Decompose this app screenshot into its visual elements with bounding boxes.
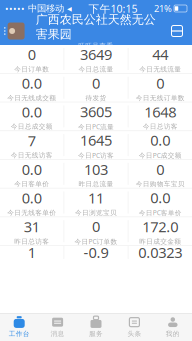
staticText: 今日总访客 — [143, 122, 178, 131]
button[interactable]: 0 — [64, 74, 128, 102]
staticText: 工作台 — [9, 330, 30, 338]
button[interactable]: 我的 — [154, 313, 192, 341]
staticText: 消息 — [51, 330, 65, 338]
staticText: 中国移动 — [25, 3, 64, 14]
staticText: 今日PC流量 — [78, 122, 114, 131]
staticText: 0.0 — [22, 102, 42, 122]
staticText: 0 — [156, 73, 164, 93]
staticText: 1648 — [144, 102, 176, 122]
button[interactable]: 头条 — [115, 313, 154, 341]
button[interactable]: 0 — [0, 45, 63, 73]
staticText: 0.0 — [150, 130, 170, 150]
button[interactable]: 0.0 — [0, 102, 63, 130]
button[interactable]: 172.0 — [128, 217, 192, 245]
staticText: 今日总流量 — [78, 65, 113, 73]
staticText: 今日浏览宝贝 — [75, 209, 117, 217]
staticText: ••••• — [5, 2, 25, 15]
staticText: 昨日总访客 — [14, 237, 49, 245]
button[interactable]: 103 — [64, 160, 128, 188]
staticText: 0.0323 — [138, 243, 182, 262]
button[interactable]: 0.0 — [0, 160, 63, 188]
staticText: 0 — [28, 45, 36, 64]
staticText: 7 — [28, 131, 36, 150]
staticText: 今日客单价 — [14, 180, 49, 188]
button[interactable]: 0 — [128, 160, 192, 188]
button[interactable]: 切换视图 — [165, 17, 189, 45]
button[interactable]: 1648 — [128, 102, 192, 130]
staticText: 0.0 — [22, 73, 42, 93]
staticText: 今日PC成交额 — [139, 151, 182, 160]
staticText: 0 — [92, 216, 100, 236]
staticText: 今日PC客单价 — [139, 208, 182, 217]
button[interactable]: 0 — [64, 217, 128, 245]
staticText: 广西农民公社天然无公害果园 — [36, 12, 156, 42]
button[interactable]: 11 — [64, 188, 128, 216]
staticText: 下午10:15 — [88, 1, 137, 16]
staticText: 103 — [84, 159, 108, 179]
staticText: 今日PC访客 — [78, 151, 114, 160]
staticText: 头条 — [127, 330, 141, 338]
staticText: 我的 — [166, 330, 180, 338]
staticText: 今日订单数 — [14, 65, 49, 73]
staticText: -0.9 — [83, 243, 108, 262]
staticText: 0.0 — [22, 159, 42, 179]
staticText: 今日无线订单数 — [136, 94, 185, 102]
staticText: 今日无线客单价 — [7, 209, 56, 217]
staticText: ◂ — [64, 3, 72, 14]
staticText: 服务 — [89, 330, 103, 338]
button[interactable]: 44 — [128, 45, 192, 73]
staticText: 0 — [156, 159, 164, 179]
staticText: 0.0 — [150, 188, 170, 207]
button[interactable]: 消息 — [38, 313, 77, 341]
button[interactable]: 0.0 — [0, 74, 63, 102]
button[interactable]: 0.0 — [128, 188, 192, 216]
staticText: 待发货 — [85, 94, 106, 102]
button[interactable]: 3649 — [64, 45, 128, 73]
button[interactable]: 1 — [0, 246, 63, 259]
staticText: 31 — [24, 217, 40, 236]
staticText: 旺旺号查看 — [78, 42, 113, 50]
staticText: 21% — [154, 2, 172, 15]
staticText: 3649 — [80, 45, 112, 64]
staticText: 1 — [28, 243, 36, 262]
button[interactable]: 0 — [128, 74, 192, 102]
staticText: 今日PC订单数 — [74, 237, 117, 246]
staticText: 今日无线流量 — [139, 65, 181, 73]
button[interactable]: -0.9 — [64, 246, 128, 259]
staticText: 172.0 — [142, 217, 178, 236]
staticText: 今日总成交额 — [11, 122, 53, 131]
staticText: 0 — [92, 73, 100, 93]
button[interactable]: 1645 — [64, 131, 128, 159]
staticText: 0.0 — [22, 188, 42, 208]
staticText: 昨日总流量 — [78, 180, 113, 188]
staticText: 44 — [152, 45, 168, 64]
staticText: 3605 — [80, 102, 112, 121]
button[interactable]: 0.0 — [0, 188, 63, 216]
button[interactable]: 0.0 — [128, 131, 192, 159]
staticText: 今日无线访客 — [11, 151, 53, 159]
button[interactable]: 服务 — [77, 313, 115, 341]
staticText: 11 — [88, 188, 104, 208]
staticText: 今日无线成交额 — [7, 94, 56, 102]
button[interactable]: 31 — [0, 217, 63, 245]
button[interactable]: 工作台 — [0, 313, 38, 341]
button[interactable]: 3605 — [64, 102, 128, 130]
button[interactable]: 7 — [0, 131, 63, 159]
button[interactable]: 0.0323 — [128, 246, 192, 259]
button[interactable]: 店铺信息 — [0, 17, 27, 45]
staticText: 今日购物车宝贝 — [136, 180, 185, 188]
staticText: 1645 — [80, 130, 112, 150]
staticText: 昨日成交金额 — [139, 237, 181, 245]
